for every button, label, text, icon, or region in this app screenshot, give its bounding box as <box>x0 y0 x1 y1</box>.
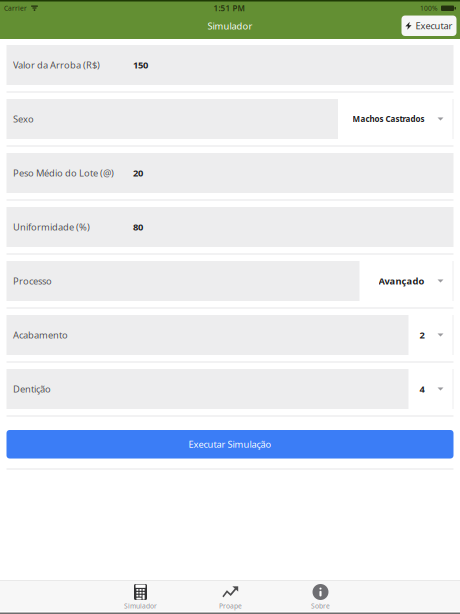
staticText: 100% <box>420 4 438 13</box>
staticText: Simulador <box>207 20 252 32</box>
button[interactable]: Executar Simulação <box>6 430 453 458</box>
staticText: 80 <box>133 221 143 233</box>
staticText: Acabamento <box>13 329 68 341</box>
button[interactable]: 2 <box>408 314 452 355</box>
staticText: Dentição <box>13 383 51 395</box>
staticText: Proape <box>219 601 242 610</box>
staticText: Sexo <box>13 113 34 125</box>
staticText: Executar <box>416 20 453 32</box>
button[interactable]: Executar <box>401 15 456 36</box>
staticText: Avançado <box>378 275 424 287</box>
staticText: 4 <box>419 383 424 395</box>
staticText: Machos Castrados <box>352 114 424 124</box>
staticText: 2 <box>419 329 424 341</box>
staticText: 1:51 PM <box>213 3 244 13</box>
button[interactable]: Sobre <box>275 580 365 611</box>
staticText: 150 <box>133 59 148 71</box>
staticText: Valor da Arroba (R$) <box>13 59 100 71</box>
staticText: Processo <box>13 275 52 287</box>
button[interactable]: Proape <box>185 580 275 611</box>
button[interactable]: Avançado <box>359 260 452 301</box>
staticText: Sobre <box>311 601 330 610</box>
button[interactable]: Simulador <box>95 580 185 611</box>
staticText: 20 <box>133 167 143 179</box>
staticText: Executar Simulação <box>188 438 271 450</box>
staticText: Simulador <box>124 601 157 610</box>
staticText: Peso Médio do Lote (@) <box>13 167 114 179</box>
button[interactable]: Machos Castrados <box>338 98 452 139</box>
staticText: Carrier <box>4 4 27 13</box>
staticText: Uniformidade (%) <box>13 221 90 233</box>
button[interactable]: 4 <box>408 368 452 409</box>
